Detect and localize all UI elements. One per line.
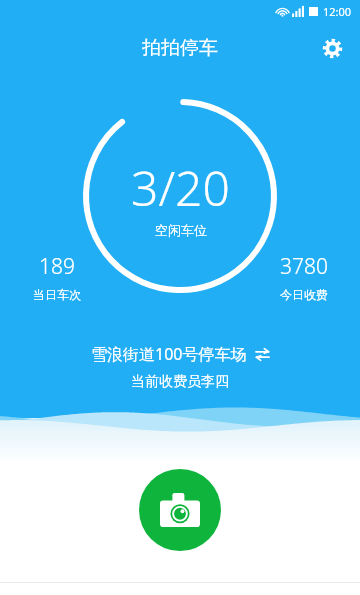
button[interactable]: Settings <box>314 33 350 63</box>
button[interactable]: 3780 <box>251 252 356 302</box>
button[interactable]: 雪浪街道100号停车场 <box>85 341 276 367</box>
staticText: 189 <box>39 252 75 281</box>
staticText: 3/20 <box>131 155 230 220</box>
staticText: 拍拍停车 <box>142 36 218 60</box>
staticText: 3780 <box>280 252 328 281</box>
staticText: 12:00 <box>323 4 352 19</box>
staticText: 雪浪街道100号停车场 <box>91 343 247 365</box>
staticText: 当日车次 <box>33 287 81 302</box>
staticText: 空闲车位 <box>155 222 207 238</box>
staticText: 今日收费 <box>280 287 328 302</box>
button[interactable]: Take photo <box>139 469 221 551</box>
staticText: 当前收费员李四 <box>131 373 229 391</box>
button[interactable]: 189 <box>4 252 109 302</box>
